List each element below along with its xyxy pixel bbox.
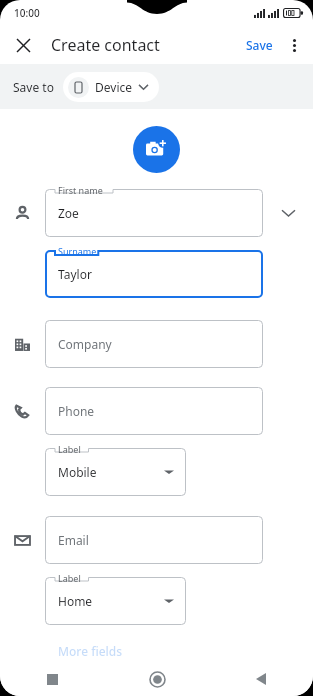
button[interactable]: Company: [45, 320, 263, 368]
staticText: Create contact: [51, 34, 160, 56]
button[interactable]: Save: [242, 34, 277, 56]
staticText: Surname: [58, 245, 97, 257]
staticText: Label: [58, 572, 81, 584]
staticText: First name: [58, 184, 103, 196]
button[interactable]: Surname: [45, 250, 263, 298]
button[interactable]: Label: [45, 448, 186, 496]
button[interactable]: Recent apps: [0, 662, 105, 696]
button[interactable]: Close: [10, 32, 36, 58]
button[interactable]: Home: [105, 662, 209, 696]
button[interactable]: Add contact photo: [133, 126, 180, 173]
button[interactable]: Expand name fields: [263, 189, 313, 237]
staticText: Taylor: [58, 266, 92, 282]
button[interactable]: Back: [209, 662, 313, 696]
staticText: Phone: [58, 403, 95, 419]
staticText: More fields: [58, 643, 123, 659]
staticText: Save: [246, 37, 273, 53]
staticText: Home: [58, 593, 93, 609]
button[interactable]: Label: [45, 577, 186, 625]
staticText: Zoe: [58, 205, 79, 221]
staticText: Company: [58, 336, 112, 352]
staticText: Save to: [13, 79, 54, 95]
button[interactable]: Email: [45, 516, 263, 564]
staticText: Mobile: [58, 464, 97, 480]
button[interactable]: First name: [45, 189, 263, 237]
staticText: Email: [58, 532, 89, 548]
button[interactable]: More options: [282, 33, 306, 57]
staticText: Device: [95, 79, 133, 95]
button[interactable]: Device: [63, 72, 159, 102]
staticText: Label: [58, 443, 81, 455]
button[interactable]: Phone: [45, 387, 263, 435]
staticText: 10:00: [14, 6, 40, 20]
